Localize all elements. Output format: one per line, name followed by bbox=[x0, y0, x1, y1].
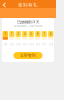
staticText: 12.1 bbox=[4, 43, 7, 46]
button[interactable]: 1 bbox=[3, 31, 8, 40]
button[interactable]: 5 bbox=[29, 31, 34, 40]
staticText: 12.3 bbox=[16, 43, 20, 46]
staticText: 已连续签到 3 天 bbox=[17, 20, 39, 24]
button[interactable]: 2 bbox=[9, 31, 14, 40]
staticText: 8 bbox=[50, 32, 52, 36]
button[interactable]: 4 bbox=[22, 31, 27, 40]
staticText: 12.4 bbox=[23, 43, 27, 46]
staticText: 签到有礼 bbox=[18, 2, 38, 8]
staticText: 2 bbox=[11, 32, 13, 36]
button[interactable]: 7 bbox=[42, 31, 47, 40]
staticText: 3 bbox=[17, 32, 19, 36]
staticText: 立即签到 bbox=[20, 53, 36, 58]
staticText: 12.2 bbox=[10, 43, 14, 46]
staticText: 4 bbox=[24, 32, 26, 36]
staticText: 1 bbox=[5, 32, 6, 36]
button[interactable]: 3 bbox=[16, 31, 21, 40]
button[interactable]: 立即签到 bbox=[13, 52, 42, 59]
button[interactable]: 8 bbox=[48, 31, 53, 40]
staticText: 12.8 bbox=[49, 43, 53, 46]
staticText: 5 bbox=[30, 32, 32, 36]
button[interactable]: 6 bbox=[35, 31, 40, 40]
staticText: 7 bbox=[43, 32, 45, 36]
staticText: 12.7 bbox=[42, 43, 46, 46]
button[interactable]: Back bbox=[0, 1, 9, 9]
staticText: 6 bbox=[37, 32, 39, 36]
staticText: 每日签到领积分，连签7天得好礼 bbox=[13, 25, 42, 27]
staticText: 12.5 bbox=[29, 43, 33, 46]
staticText: 12.6 bbox=[36, 43, 40, 46]
